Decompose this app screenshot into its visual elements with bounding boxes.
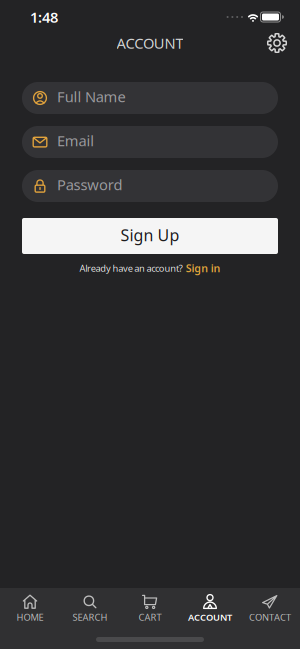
button[interactable]: Email xyxy=(22,126,278,158)
staticText: Already have an account? xyxy=(79,262,183,274)
staticText: ACCOUNT xyxy=(117,33,183,53)
staticText: HOME xyxy=(16,611,43,623)
button[interactable]: Settings xyxy=(266,32,288,54)
staticText: Email xyxy=(57,131,94,150)
button[interactable]: Password xyxy=(22,170,278,202)
staticText: ACCOUNT xyxy=(188,611,232,623)
staticText: Password xyxy=(57,175,123,194)
button[interactable]: Sign Up xyxy=(22,218,278,254)
button[interactable]: HOME xyxy=(0,594,60,623)
staticText: CONTACT xyxy=(249,611,291,623)
staticText: Sign in xyxy=(186,261,220,275)
button[interactable]: ACCOUNT xyxy=(180,594,240,623)
staticText: Full Name xyxy=(57,87,125,106)
button[interactable]: Sign in xyxy=(186,261,220,275)
button[interactable]: SEARCH xyxy=(60,594,120,623)
button[interactable]: CART xyxy=(120,594,180,623)
button[interactable]: Full Name xyxy=(22,82,278,114)
staticText: 1:48 xyxy=(30,7,58,27)
staticText: SEARCH xyxy=(72,611,107,623)
button[interactable]: CONTACT xyxy=(240,594,300,623)
staticText: CART xyxy=(138,611,161,623)
staticText: Sign Up xyxy=(120,224,179,246)
